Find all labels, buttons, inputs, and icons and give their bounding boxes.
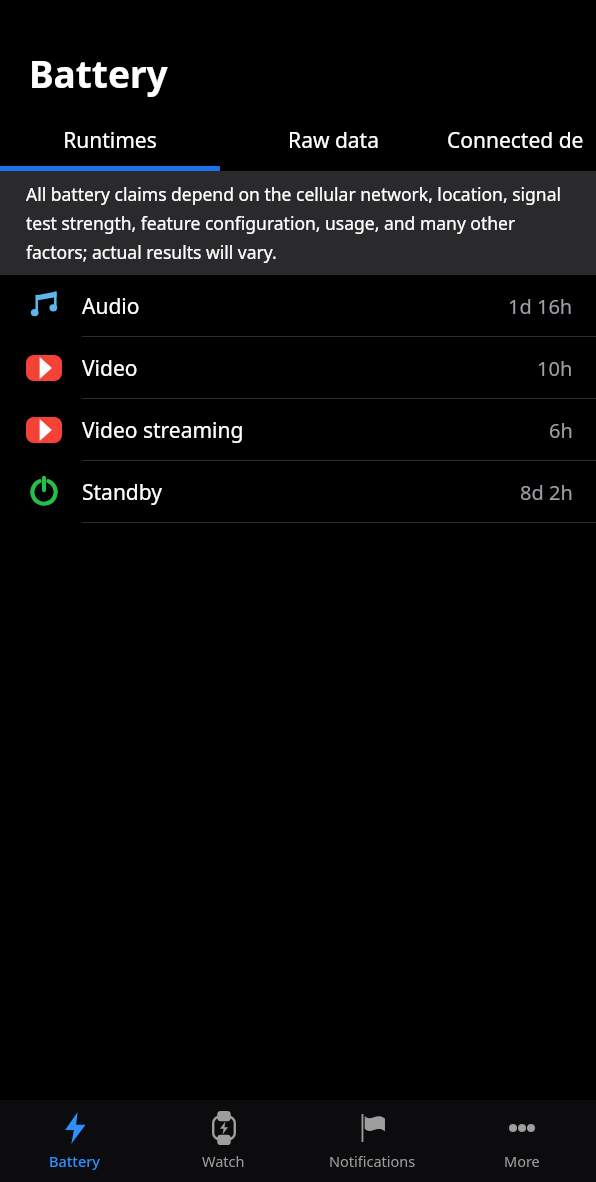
staticText: Video streaming [82, 416, 549, 445]
button[interactable]: Raw data [220, 109, 447, 171]
button[interactable]: Audio [0, 275, 596, 337]
button[interactable]: Notifications [298, 1100, 447, 1182]
button[interactable]: Connected de [447, 109, 596, 171]
staticText: 6h [549, 417, 573, 444]
staticText: Runtimes [63, 126, 157, 155]
staticText: 1d 16h [508, 293, 573, 320]
button[interactable]: Runtimes [0, 109, 220, 171]
staticText: More [504, 1151, 540, 1171]
staticText: 10h [537, 355, 573, 382]
staticText: Raw data [288, 126, 379, 155]
staticText: Battery [29, 48, 168, 98]
staticText: 8d 2h [520, 479, 573, 506]
staticText: Audio [82, 292, 508, 321]
staticText: Notifications [329, 1151, 416, 1171]
staticText: Watch [202, 1151, 245, 1171]
staticText: Standby [82, 478, 520, 507]
button[interactable]: Video streaming [0, 399, 596, 461]
button[interactable]: Standby [0, 461, 596, 523]
staticText: Connected de [447, 126, 584, 155]
button[interactable]: Watch [149, 1100, 298, 1182]
button[interactable]: Video [0, 337, 596, 399]
staticText: Video [82, 354, 537, 383]
staticText: Battery [49, 1151, 100, 1171]
button[interactable]: Battery [0, 1100, 149, 1182]
button[interactable]: More [447, 1100, 596, 1182]
staticText: All battery claims depend on the cellula… [26, 182, 566, 264]
